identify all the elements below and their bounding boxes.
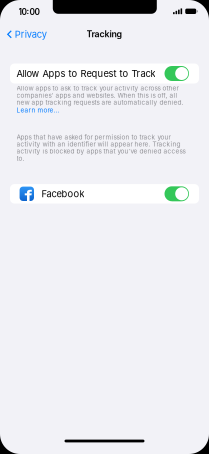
staticText: Privacy [15,29,47,40]
staticText: Tracking [86,29,122,39]
staticText: Allow apps to ask to track your activity… [16,84,183,106]
staticText: Facebook [41,188,84,199]
button[interactable]: Learn more... [16,106,59,114]
button[interactable]: Allow Apps to Request to Track [10,63,199,83]
staticText: Learn more... [16,106,59,114]
staticText: Allow Apps to Request to Track [16,68,155,79]
staticText: Apps that have asked for permission to t… [16,133,185,162]
staticText: 10:00 [18,7,39,17]
button[interactable]: Facebook [10,184,199,204]
button[interactable]: Privacy [1,25,51,44]
